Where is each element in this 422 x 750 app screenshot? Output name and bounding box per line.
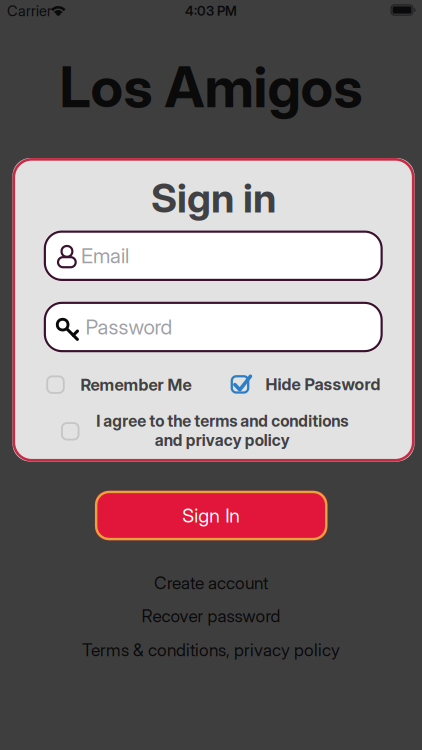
- staticText: Hide Password: [265, 374, 380, 394]
- staticText: Create account: [154, 572, 268, 593]
- staticText: Los Amigos: [59, 53, 362, 121]
- staticText: I agree to the terms and conditions and …: [96, 411, 348, 450]
- staticText: Carrier: [7, 2, 52, 20]
- button[interactable]: I agree to the terms and conditions and …: [60, 414, 350, 448]
- staticText: Sign in: [151, 174, 276, 222]
- staticText: Sign In: [182, 504, 240, 527]
- button[interactable]: Create account: [154, 572, 268, 593]
- button[interactable]: Recover password: [141, 605, 280, 626]
- button[interactable]: Sign In: [95, 491, 327, 540]
- staticText: Email: [81, 243, 129, 268]
- button[interactable]: Password: [44, 302, 383, 352]
- button[interactable]: Terms & conditions, privacy policy: [82, 639, 340, 660]
- staticText: 4:03 PM: [185, 3, 237, 19]
- button[interactable]: Email: [44, 230, 383, 281]
- staticText: Password: [85, 314, 172, 339]
- staticText: Recover password: [141, 605, 280, 626]
- button[interactable]: Hide Password: [231, 374, 383, 394]
- button[interactable]: Remember Me: [46, 375, 198, 395]
- staticText: Remember Me: [80, 375, 191, 395]
- staticText: Terms & conditions, privacy policy: [82, 639, 340, 660]
